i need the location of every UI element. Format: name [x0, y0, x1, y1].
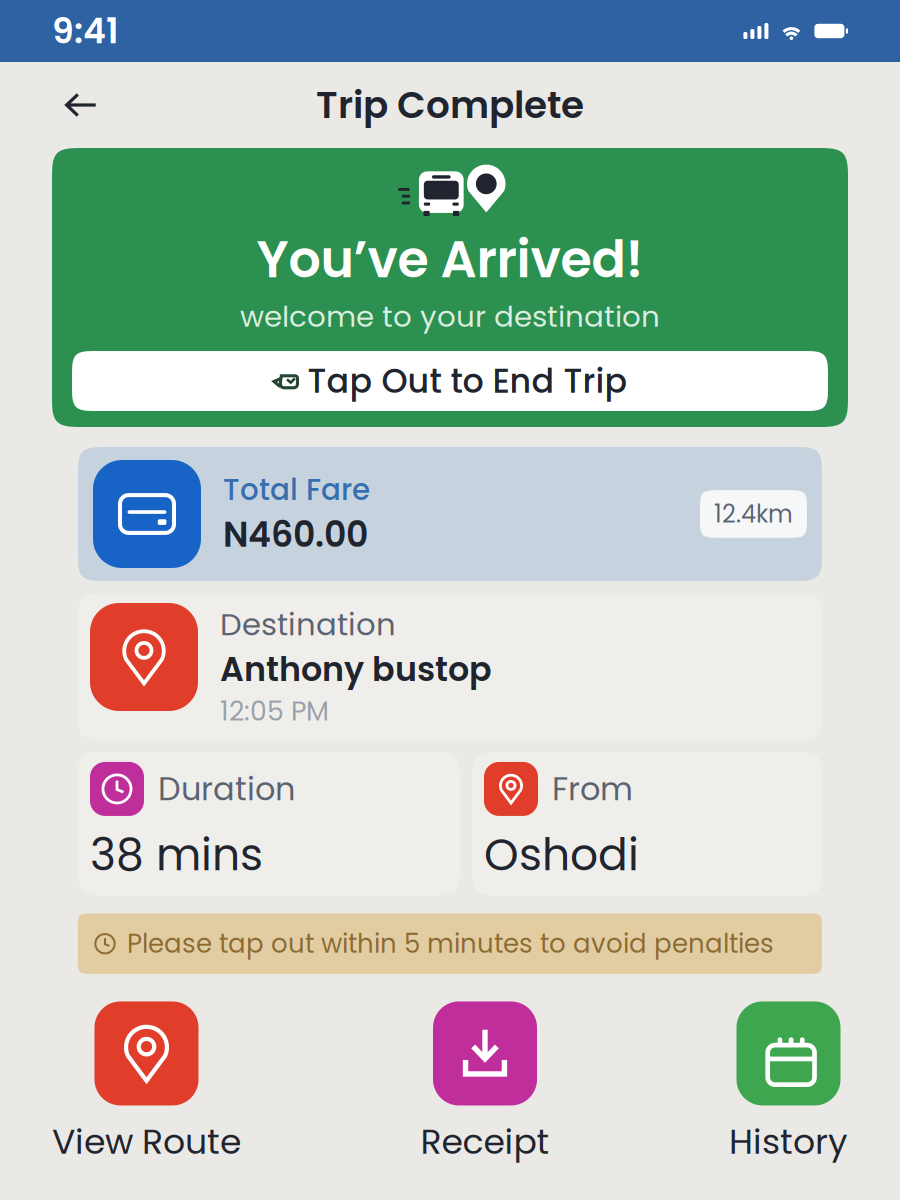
staticText: Trip Complete [316, 79, 584, 131]
staticText: Anthony bustop [220, 646, 492, 693]
staticText: You’ve Arrived! [256, 224, 643, 295]
button[interactable]: Tap Out to End Trip [72, 351, 828, 411]
staticText: welcome to your destination [240, 296, 660, 337]
staticText: View Route [52, 1117, 241, 1166]
staticText: 38 mins [90, 824, 263, 885]
staticText: Destination [220, 603, 396, 646]
button[interactable]: History [729, 1001, 848, 1166]
staticText: Oshodi [484, 824, 639, 885]
button[interactable]: Back [52, 76, 110, 134]
staticText: 9:41 [52, 7, 119, 55]
staticText: Total Fare [223, 469, 370, 510]
staticText: From [552, 766, 633, 811]
staticText: 12:05 PM [220, 693, 329, 730]
staticText: History [729, 1117, 848, 1166]
staticText: Duration [158, 766, 295, 811]
staticText: 12.4km [714, 497, 793, 531]
staticText: Please tap out within 5 minutes to avoid… [127, 925, 774, 962]
button[interactable]: View Route [52, 1001, 241, 1166]
staticText: N460.00 [223, 510, 368, 559]
button[interactable]: Receipt [420, 1001, 549, 1166]
staticText: Tap Out to End Trip [307, 358, 627, 404]
staticText: Receipt [420, 1117, 549, 1166]
